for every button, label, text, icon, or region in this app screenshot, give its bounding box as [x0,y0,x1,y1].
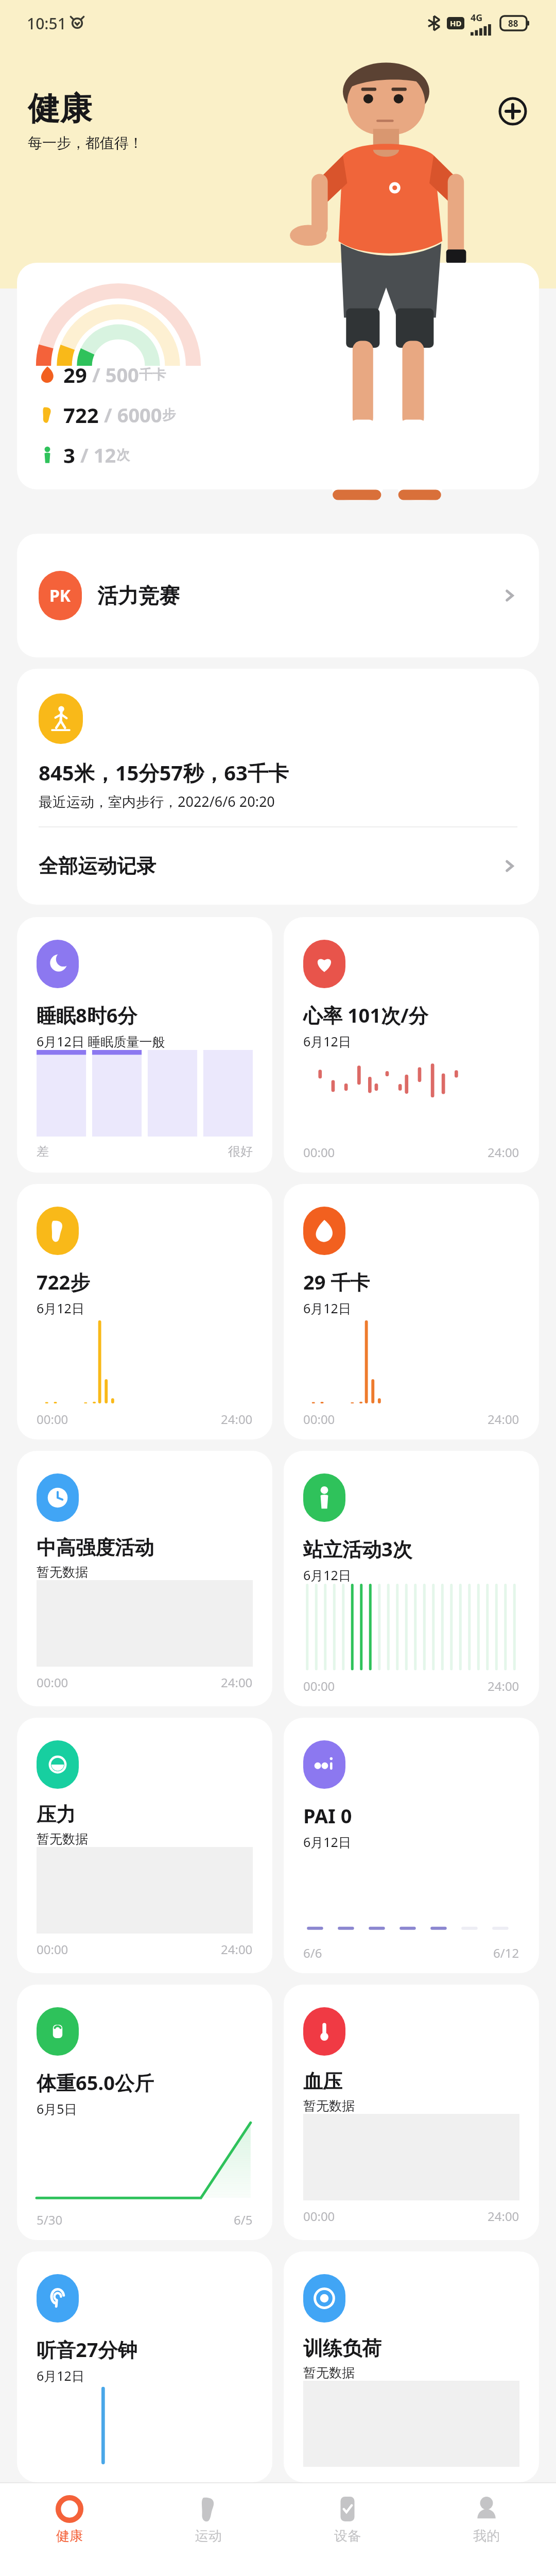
staticText: 体重65.0公斤 [37,2069,154,2096]
staticText: HD [450,18,462,28]
staticText: 心率 101次/分 [303,1002,428,1028]
staticText: 24:00 [221,1411,253,1424]
staticText: 24:00 [488,1677,519,1691]
staticText: 活力竞赛 [97,583,180,608]
staticText: 最近运动，室内步行，2022/6/6 20:20 [39,792,275,811]
staticText: 6月12日 睡眠质量一般 [37,1032,165,1050]
staticText: 设备 [334,2528,361,2545]
staticText: / 6000 [104,401,162,428]
staticText: 722步 [37,1268,90,1295]
staticText: 24:00 [488,1144,519,1157]
staticText: 6月12日 [303,1299,351,1317]
button[interactable]: 训练负荷 [284,2251,539,2482]
staticText: 6/5 [234,2211,253,2225]
staticText: 压力 [37,1802,76,1827]
staticText: 睡眠8时6分 [37,1002,137,1028]
staticText: 6/12 [493,1944,519,1958]
staticText: 步 [162,406,176,423]
staticText: 千卡 [139,366,166,383]
staticText: 站立活动3次 [303,1535,412,1562]
staticText: 我的 [473,2528,500,2545]
staticText: 6月12日 [37,2367,84,2384]
staticText: 6/6 [303,1944,322,1958]
button[interactable]: 我的 [417,2483,556,2576]
staticText: 88 [508,18,518,29]
button[interactable]: 722步 [17,1184,272,1439]
staticText: 每一步，都值得！ [28,134,143,152]
staticText: 6月12日 [37,1299,84,1317]
button[interactable]: 血压 [284,1985,539,2240]
button[interactable]: 心率 101次/分 [284,917,539,1173]
staticText: 很好 [228,1144,253,1157]
button[interactable]: 设备 [278,2483,417,2576]
staticText: PAI 0 [303,1802,352,1829]
staticText: 6月12日 [303,1566,351,1584]
staticText: 暂无数据 [303,2365,355,2381]
staticText: 暂无数据 [37,1831,88,1847]
staticText: 训练负荷 [303,2336,381,2361]
button[interactable]: 845米，15分57秒，63千卡 [17,669,539,826]
button[interactable]: 睡眠8时6分 [17,917,272,1173]
staticText: 5/30 [37,2211,63,2225]
button[interactable]: 全部运动记录 [17,827,539,905]
button[interactable]: 运动 [139,2483,278,2576]
button[interactable]: 29 千卡 [284,1184,539,1439]
button[interactable]: Add [494,93,531,130]
staticText: 6月12日 [303,1032,351,1050]
staticText: 29 千卡 [303,1268,370,1295]
staticText: 00:00 [303,2208,335,2225]
staticText: 00:00 [37,1411,68,1424]
button[interactable]: PAI 0 [284,1718,539,1973]
staticText: 29 [63,361,87,388]
staticText: 健康 [28,89,92,129]
staticText: / 500 [92,361,139,388]
staticText: 00:00 [37,1941,68,1958]
button[interactable]: 听音27分钟 [17,2251,272,2482]
button[interactable]: 压力 [17,1718,272,1973]
staticText: 听音27分钟 [37,2336,137,2363]
staticText: 845米，15分57秒，63千卡 [39,758,289,787]
staticText: 00:00 [303,1411,335,1424]
button[interactable] [17,263,539,489]
button[interactable]: PK [17,534,539,657]
staticText: 3 [63,441,75,469]
staticText: PK [49,584,71,607]
staticText: / 12 [80,442,116,468]
staticText: 24:00 [488,1411,519,1424]
staticText: 暂无数据 [37,1564,88,1580]
staticText: 24:00 [488,2208,519,2225]
staticText: 10:51 [27,13,66,34]
button[interactable]: 站立活动3次 [284,1451,539,1706]
staticText: 差 [37,1144,49,1157]
staticText: 722 [63,401,99,429]
staticText: 6月5日 [37,2100,77,2117]
staticText: 6月12日 [303,1833,351,1851]
staticText: 健康 [56,2528,83,2545]
button[interactable]: 体重65.0公斤 [17,1985,272,2240]
button[interactable]: 健康 [0,2483,139,2576]
staticText: 4G [471,11,483,24]
button[interactable]: 中高强度活动 [17,1451,272,1706]
staticText: 00:00 [37,1674,68,1691]
staticText: 24:00 [221,1674,253,1691]
staticText: 中高强度活动 [37,1535,154,1560]
staticText: 暂无数据 [303,2098,355,2114]
staticText: 00:00 [303,1677,335,1691]
staticText: 00:00 [303,1144,335,1157]
staticText: 血压 [303,2069,342,2094]
staticText: 全部运动记录 [39,854,156,878]
staticText: 运动 [195,2528,222,2545]
staticText: 次 [116,447,130,464]
staticText: 24:00 [221,1941,253,1958]
